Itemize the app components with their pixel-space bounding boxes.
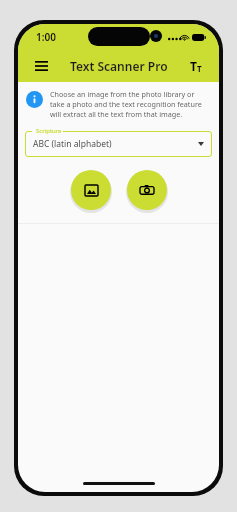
staticText: ABC (latin alphabet) bbox=[33, 138, 112, 150]
staticText: 1:00 bbox=[36, 30, 56, 44]
button[interactable]: ABC (latin alphabet) bbox=[25, 131, 212, 157]
staticText: Choose an image from the photo library o… bbox=[50, 89, 209, 119]
staticText: Text Scanner Pro bbox=[70, 58, 168, 74]
button[interactable]: Choose photo from library bbox=[71, 170, 111, 210]
button[interactable]: Take a photo with camera bbox=[127, 170, 167, 210]
staticText: T bbox=[190, 58, 197, 74]
staticText: T bbox=[197, 63, 202, 74]
button[interactable]: Open navigation menu bbox=[27, 52, 55, 80]
button[interactable]: Change text size bbox=[182, 52, 210, 80]
staticText: Scripture bbox=[36, 127, 62, 135]
